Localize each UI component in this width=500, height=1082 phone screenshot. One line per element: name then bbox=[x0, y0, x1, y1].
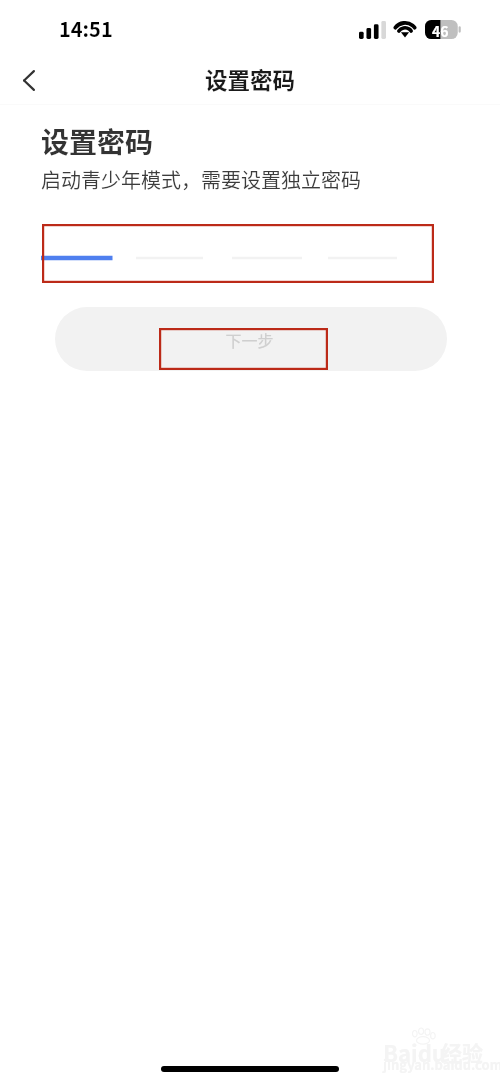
button[interactable]: 密码输入框 bbox=[42, 224, 434, 283]
staticText: 启动青少年模式，需要设置独立密码 bbox=[41, 165, 361, 194]
staticText: 下一步 bbox=[225, 328, 274, 351]
staticText: 经验 bbox=[441, 1037, 483, 1067]
button[interactable]: 返回 bbox=[6, 56, 54, 104]
staticText: jingyan.baidu.com bbox=[383, 1055, 500, 1074]
staticText: 46 bbox=[432, 21, 449, 40]
staticText: 14:51 bbox=[59, 14, 113, 43]
staticText: Baidu bbox=[383, 1036, 446, 1068]
staticText: 设置密码 bbox=[205, 63, 296, 96]
button[interactable]: 下一步 bbox=[55, 307, 447, 371]
staticText: 设置密码 bbox=[41, 121, 154, 162]
